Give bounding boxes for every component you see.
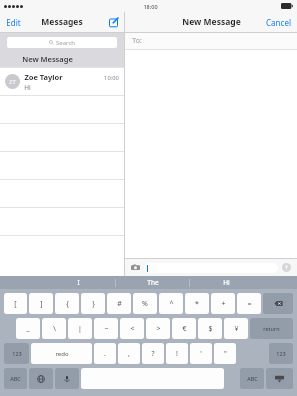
button[interactable]: < (120, 318, 144, 339)
button[interactable]: Dictation (55, 368, 79, 389)
staticText: + (221, 299, 226, 309)
staticText: > (156, 324, 161, 334)
button[interactable]: Compose new message (104, 14, 124, 30)
button[interactable]: ^ (159, 293, 183, 314)
staticText: . (104, 349, 106, 359)
button[interactable]: Search (7, 37, 117, 48)
button[interactable]: ' (190, 343, 212, 364)
staticText: 18:00 (143, 3, 158, 10)
button[interactable]: Hide keyboard (266, 368, 293, 389)
staticText: ¥ (234, 324, 239, 334)
button[interactable]: ABC (240, 368, 264, 389)
staticText: < (130, 324, 135, 334)
button[interactable]: " (214, 343, 236, 364)
button[interactable]: + (211, 293, 235, 314)
button[interactable]: Record audio (281, 262, 292, 273)
staticText: $ (208, 324, 213, 334)
staticText: ] (40, 299, 43, 309)
button[interactable]: $ (198, 318, 222, 339)
button[interactable]: , (118, 343, 140, 364)
staticText: Search (56, 39, 75, 47)
button[interactable]: [ (4, 293, 27, 314)
staticText: ZT (9, 78, 16, 86)
staticText: New Message (22, 54, 73, 64)
staticText: The (147, 278, 159, 287)
button[interactable]: € (172, 318, 196, 339)
button[interactable]: ¥ (224, 318, 248, 339)
button[interactable]: return (250, 318, 293, 339)
staticText: | (78, 324, 82, 334)
staticText: New Message (182, 16, 241, 28)
staticText: I (77, 278, 80, 287)
staticText: Cancel (266, 17, 291, 28)
button[interactable]: The (116, 276, 189, 289)
button[interactable]: ~ (94, 318, 118, 339)
staticText: = (247, 299, 252, 309)
button[interactable]: 123 (4, 343, 29, 364)
button[interactable]: | (68, 318, 92, 339)
button[interactable]: 123 (269, 343, 293, 364)
button[interactable] (263, 293, 293, 314)
staticText: ~ (104, 324, 109, 334)
button[interactable]: Camera (130, 262, 141, 273)
staticText: Hi (223, 278, 230, 287)
staticText: % (142, 299, 148, 309)
staticText: # (117, 299, 122, 309)
button[interactable]: ? (142, 343, 164, 364)
staticText: ^ (169, 299, 174, 309)
button[interactable]: Hi (190, 276, 263, 289)
button[interactable]: New Message (0, 51, 124, 67)
button[interactable]: { (55, 293, 79, 314)
button[interactable]: redo (31, 343, 92, 364)
button[interactable]: I (42, 276, 115, 289)
button[interactable]: ZT (0, 68, 124, 95)
button[interactable]: ! (166, 343, 188, 364)
button[interactable]: Switch keyboard (29, 368, 53, 389)
staticText: return (263, 325, 280, 332)
button[interactable]: To: (125, 33, 297, 49)
staticText: } (92, 299, 95, 309)
button[interactable]: * (185, 293, 209, 314)
staticText: 123 (12, 350, 22, 357)
staticText: Zoe Taylor (24, 72, 63, 82)
staticText: * (195, 299, 199, 309)
button[interactable]: > (146, 318, 170, 339)
staticText: Hi (24, 83, 31, 92)
staticText: \ (53, 324, 56, 334)
button[interactable]: _ (16, 318, 40, 339)
staticText: [ (14, 299, 17, 309)
staticText: ABC (10, 375, 21, 382)
staticText: ? (151, 349, 155, 359)
button[interactable]: # (107, 293, 131, 314)
staticText: " (224, 349, 227, 359)
button[interactable]: . (94, 343, 116, 364)
staticText: € (182, 324, 187, 334)
staticText: Messages (41, 16, 83, 28)
staticText: ! (176, 349, 178, 359)
button[interactable]: \ (42, 318, 66, 339)
button[interactable]: Edit (0, 14, 27, 31)
button[interactable] (144, 263, 278, 273)
staticText: ABC (247, 375, 258, 382)
button[interactable]: ABC (4, 368, 27, 389)
button[interactable]: = (237, 293, 261, 314)
staticText: , (128, 349, 130, 359)
staticText: { (66, 299, 69, 309)
staticText: To: (132, 36, 142, 46)
staticText: redo (55, 350, 69, 358)
button[interactable]: ] (29, 293, 53, 314)
button[interactable]: } (81, 293, 105, 314)
button[interactable]: Cancel (260, 14, 297, 31)
staticText: ' (200, 349, 202, 359)
button[interactable]: % (133, 293, 157, 314)
staticText: 10:00 (104, 74, 119, 82)
staticText: 123 (276, 350, 286, 357)
staticText: _ (26, 324, 30, 334)
staticText: Edit (6, 17, 21, 28)
